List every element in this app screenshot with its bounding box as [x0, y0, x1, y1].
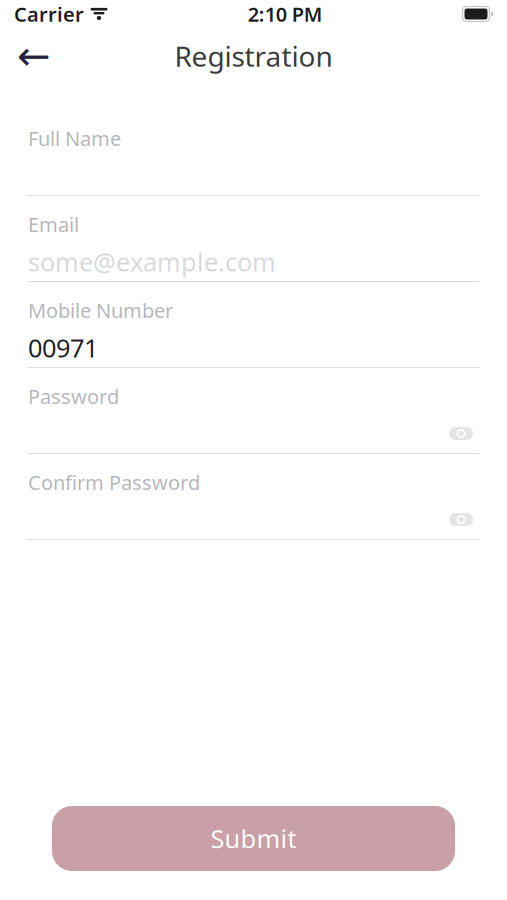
button[interactable]: Show password: [443, 505, 479, 535]
staticText: Mobile Number: [28, 297, 173, 324]
staticText: 00971: [28, 331, 98, 364]
staticText: 2:10 PM: [248, 1, 323, 27]
staticText: some@example.com: [28, 245, 276, 278]
staticText: Password: [28, 383, 119, 410]
staticText: ←: [17, 33, 51, 79]
button[interactable]: Submit: [52, 806, 455, 871]
staticText: Registration: [174, 37, 332, 75]
button[interactable]: Show password: [443, 419, 479, 449]
staticText: Full Name: [28, 125, 121, 152]
staticText: Carrier: [14, 1, 84, 27]
staticText: Confirm Password: [28, 469, 200, 496]
staticText: Email: [28, 211, 79, 238]
button[interactable]: Back: [10, 34, 58, 78]
staticText: Submit: [210, 822, 296, 855]
